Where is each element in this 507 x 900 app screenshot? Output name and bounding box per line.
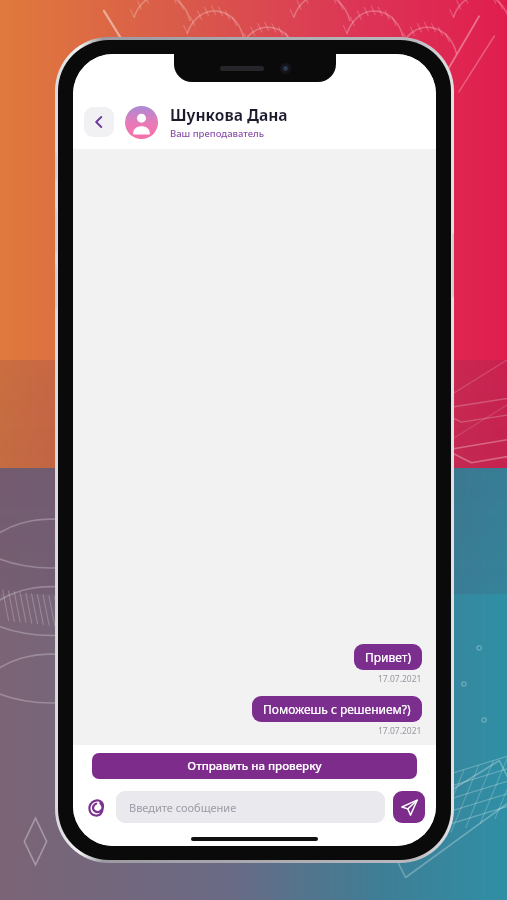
staticText: 17.07.2021 — [378, 673, 422, 685]
button[interactable]: Send — [393, 791, 425, 823]
button[interactable]: Введите сообщение — [116, 791, 385, 823]
button[interactable] — [125, 106, 158, 139]
staticText: Привет) — [365, 649, 411, 665]
staticText: Поможешь с решением?) — [263, 701, 411, 717]
button[interactable]: Back — [84, 107, 114, 137]
button[interactable]: Отправить на проверку — [92, 753, 417, 779]
staticText: Введите сообщение — [129, 800, 237, 815]
button[interactable]: Привет) — [354, 644, 422, 670]
button[interactable]: Attach file — [82, 793, 110, 821]
staticText: 17.07.2021 — [378, 725, 422, 737]
staticText: Отправить на проверку — [187, 758, 322, 774]
staticText: Ваш преподаватель — [170, 127, 265, 140]
staticText: Шункова Дана — [170, 104, 288, 125]
button[interactable]: Поможешь с решением?) — [252, 696, 422, 722]
